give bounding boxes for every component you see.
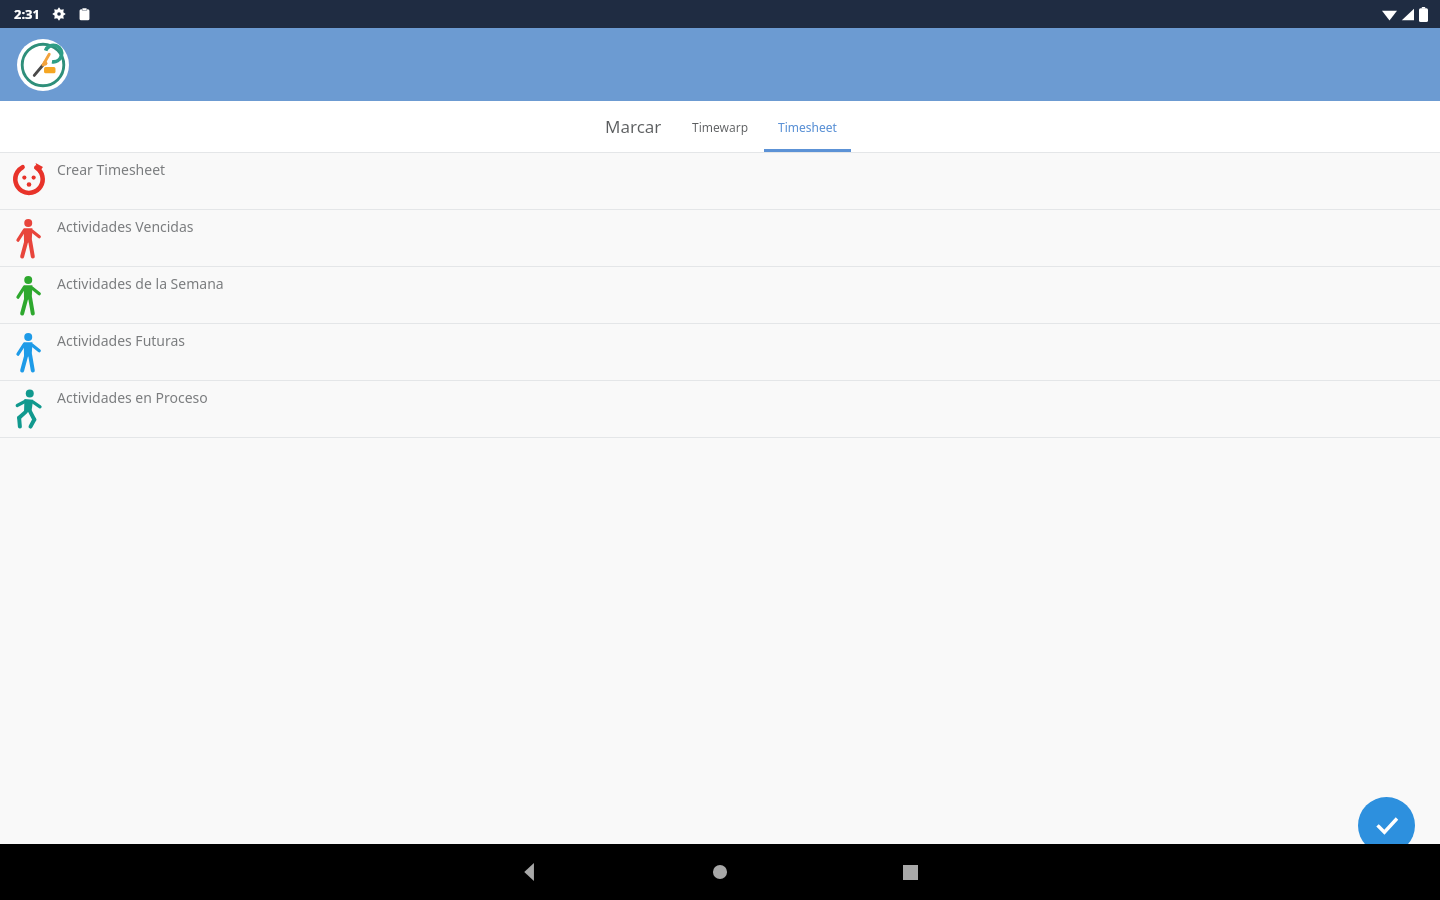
button[interactable]: Actividades Futuras [0, 324, 1440, 380]
button[interactable]: Actividades Vencidas [0, 210, 1440, 266]
staticText: Actividades en Proceso [57, 388, 208, 407]
button[interactable]: Inicio [625, 844, 815, 900]
button[interactable]: Crear Timesheet [0, 153, 1440, 209]
button[interactable]: Logo de la aplicación [17, 39, 69, 91]
button[interactable]: Timewarp [677, 101, 764, 152]
button[interactable]: Recientes [815, 844, 1005, 900]
staticText: Actividades Futuras [57, 331, 186, 350]
staticText: Timewarp [692, 119, 749, 135]
button[interactable]: Actividades en Proceso [0, 381, 1440, 437]
button[interactable]: Timesheet [764, 101, 851, 152]
staticText: Actividades de la Semana [57, 274, 224, 293]
staticText: Actividades Vencidas [57, 217, 194, 236]
button[interactable]: Confirmar [1358, 797, 1415, 854]
button[interactable]: Marcar [589, 101, 677, 152]
button[interactable]: Actividades de la Semana [0, 267, 1440, 323]
button[interactable]: Atrás [435, 844, 625, 900]
staticText: Timesheet [778, 119, 837, 135]
staticText: Marcar [605, 115, 662, 138]
staticText: Crear Timesheet [57, 160, 166, 179]
staticText: 2:31 [14, 5, 40, 23]
